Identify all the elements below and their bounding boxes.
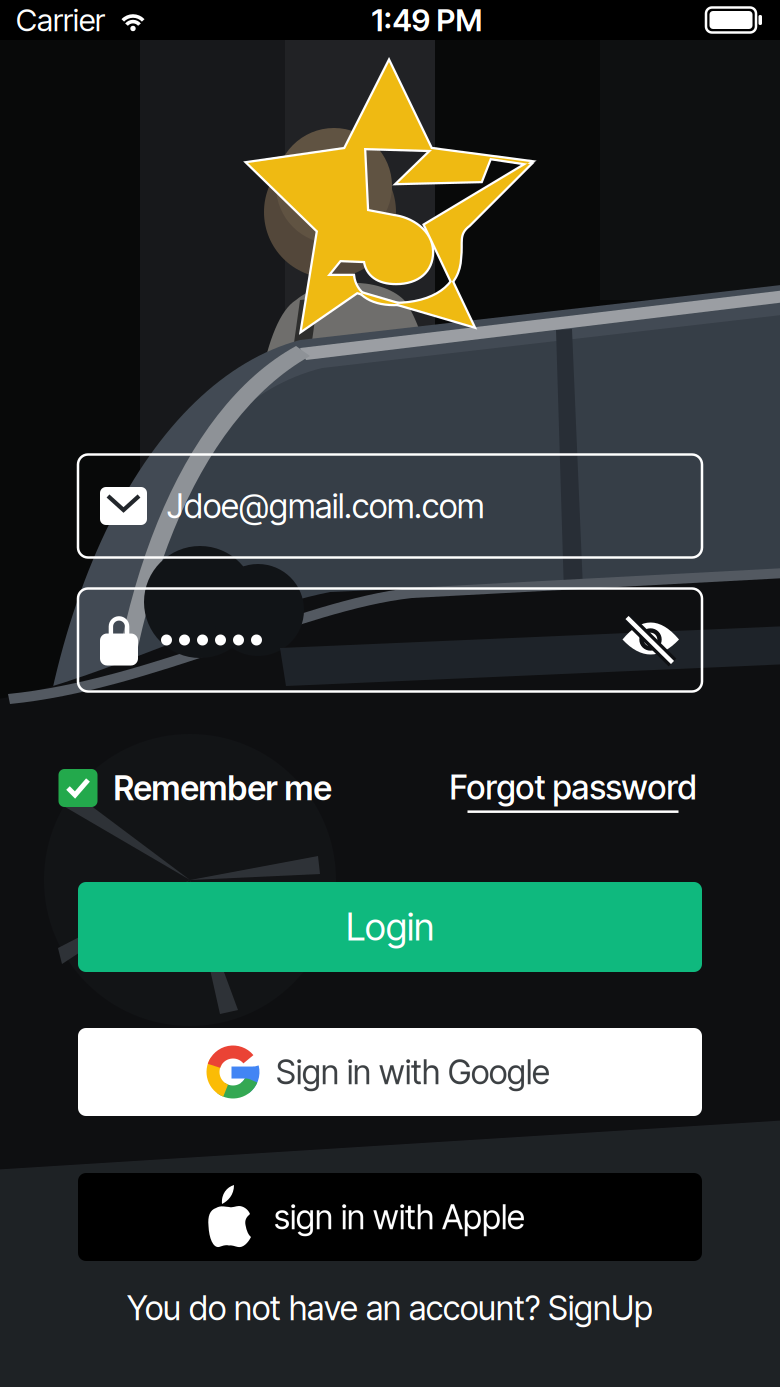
staticText: 1:49 PM	[371, 1, 482, 38]
button[interactable]: Sign in with Google	[78, 1028, 702, 1116]
staticText: sign in with Apple	[274, 1197, 525, 1237]
button[interactable]: You do not have an account? SignUp	[127, 1288, 653, 1328]
staticText: Forgot password	[449, 767, 696, 807]
button[interactable]: sign in with Apple	[78, 1173, 702, 1261]
staticText: Login	[346, 904, 434, 950]
staticText: Sign in with Google	[276, 1052, 550, 1092]
staticText: Jdoe@gmail.com.com	[167, 486, 484, 526]
button[interactable]: Remember me	[58, 768, 331, 808]
staticText: You do not have an account? SignUp	[127, 1288, 653, 1328]
button[interactable]: Forgot password	[449, 767, 696, 813]
staticText: Carrier	[16, 1, 105, 38]
staticText: Remember me	[113, 768, 331, 808]
button[interactable]: Login	[78, 882, 702, 972]
